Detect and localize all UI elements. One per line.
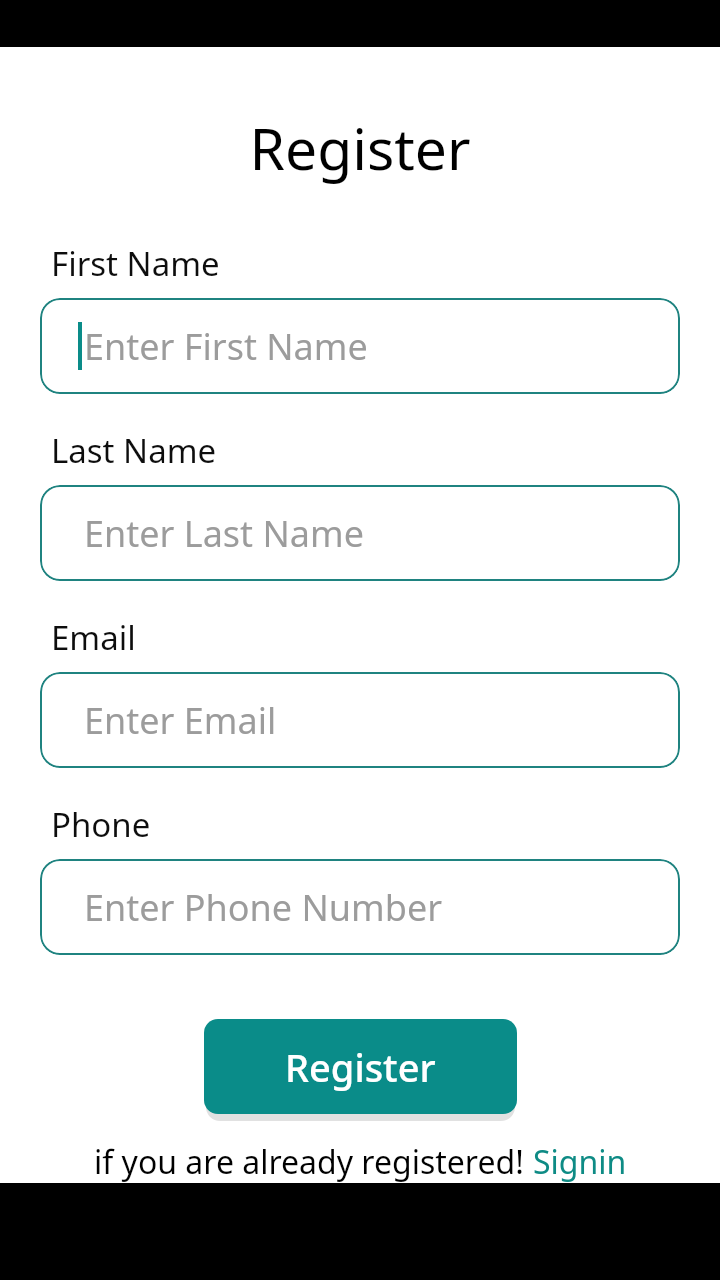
button[interactable]: Enter Phone Number [40,859,680,955]
button[interactable]: Enter First Name [40,298,680,394]
staticText: Enter Email [84,696,277,745]
staticText: Email [51,615,136,660]
staticText: Enter Phone Number [84,883,443,932]
button[interactable]: Enter Last Name [40,485,680,581]
staticText: if you are already registered! [94,1140,524,1183]
button[interactable]: Enter Email [40,672,680,768]
staticText: Enter Last Name [84,509,364,558]
staticText: Enter First Name [84,322,368,371]
staticText: Register [0,109,720,187]
staticText: First Name [51,241,220,286]
staticText: Signin [533,1140,627,1183]
staticText: Phone [51,802,151,847]
button[interactable]: Signin [533,1140,627,1183]
staticText: Register [285,1041,436,1093]
staticText: Last Name [51,428,217,473]
button[interactable]: Register [204,1019,517,1114]
